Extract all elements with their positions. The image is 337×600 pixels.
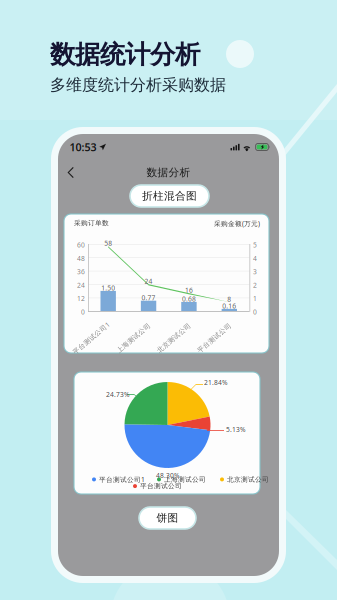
staticText: 0.68 xyxy=(182,294,196,303)
button[interactable]: 折柱混合图 xyxy=(130,185,209,207)
staticText: 平台测试公司1 xyxy=(99,475,145,484)
staticText: 4 xyxy=(253,254,257,263)
staticText: 0 xyxy=(81,307,85,316)
staticText: 48.30% xyxy=(156,471,180,480)
staticText: 24 xyxy=(145,277,153,286)
staticText: 24.73% xyxy=(106,390,130,399)
staticText: 1.50 xyxy=(101,283,115,292)
staticText: 0 xyxy=(253,307,257,316)
staticText: 折柱混合图 xyxy=(142,189,197,202)
staticText: 3 xyxy=(253,267,257,276)
staticText: 数据分析 xyxy=(146,166,190,179)
staticText: 饼图 xyxy=(156,511,178,524)
staticText: 上海测试公司 xyxy=(113,334,155,342)
staticText: 16 xyxy=(185,286,193,295)
staticText: 5 xyxy=(253,240,257,249)
staticText: 北京测试公司 xyxy=(227,475,269,483)
staticText: 上海测试公司 xyxy=(164,475,206,483)
staticText: 平台测试公司 xyxy=(193,334,235,342)
staticText: 平台测试公司1 xyxy=(68,334,114,342)
staticText: 数据统计分析 xyxy=(50,39,200,70)
staticText: 0.16 xyxy=(222,301,236,310)
button[interactable]: 饼图 xyxy=(139,507,196,529)
staticText: 采购订单数 xyxy=(74,219,109,227)
staticText: 12 xyxy=(77,294,85,303)
staticText: 60 xyxy=(77,240,85,249)
staticText: 2 xyxy=(253,281,257,290)
staticText: 1 xyxy=(253,294,257,303)
staticText: 0.77 xyxy=(142,293,156,302)
staticText: 24 xyxy=(77,281,85,290)
staticText: 8 xyxy=(227,295,231,304)
staticText: 平台测试公司 xyxy=(140,482,182,490)
staticText: 48 xyxy=(77,254,85,263)
button[interactable]: Back xyxy=(58,161,86,184)
staticText: 21.84% xyxy=(204,378,228,387)
staticText: 10:53 xyxy=(69,140,96,154)
staticText: 多维度统计分析采购数据 xyxy=(50,75,226,95)
staticText: 5.13% xyxy=(226,425,246,434)
staticText: 36 xyxy=(77,267,85,276)
staticText: 58 xyxy=(104,239,112,248)
staticText: 采购金额(万元) xyxy=(214,219,260,228)
staticText: 北京测试公司 xyxy=(153,334,195,342)
